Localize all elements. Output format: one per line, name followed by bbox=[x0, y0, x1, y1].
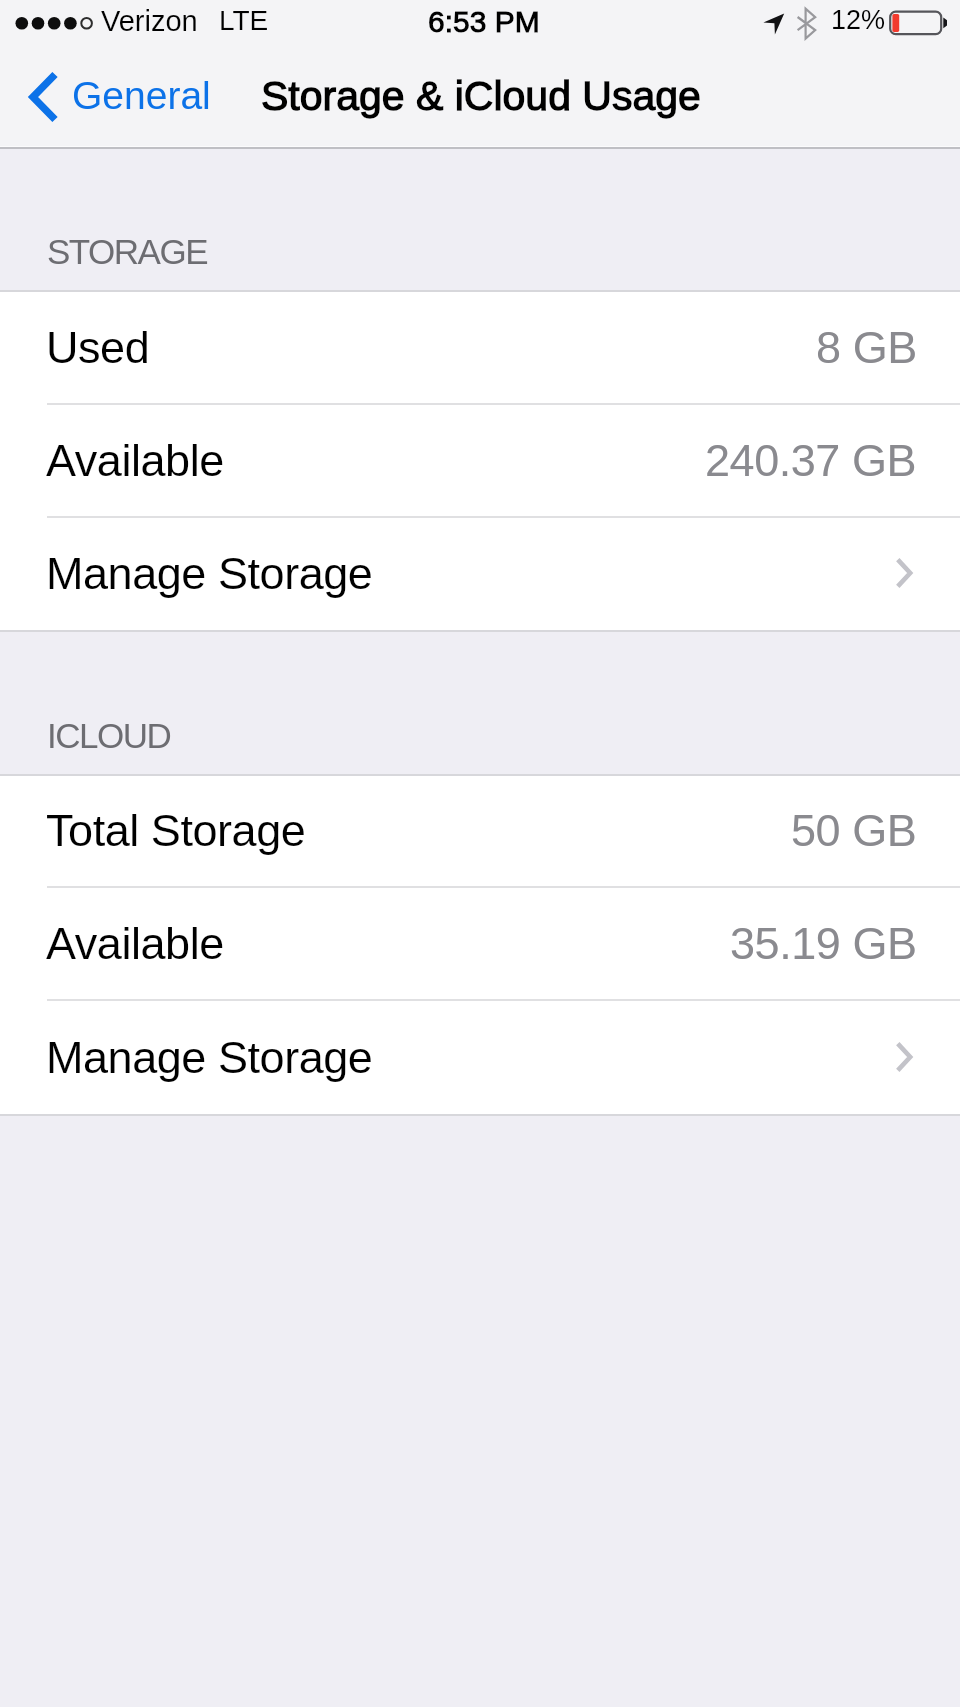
staticText: Total Storage bbox=[46, 805, 306, 855]
staticText: Available bbox=[46, 435, 224, 485]
button[interactable]: Total Storage bbox=[0, 776, 960, 888]
staticText: Available bbox=[46, 918, 224, 968]
button[interactable]: Available bbox=[0, 888, 960, 1001]
staticText: ICLOUD bbox=[47, 716, 171, 755]
button[interactable]: Available bbox=[0, 405, 960, 518]
staticText: Manage Storage bbox=[46, 1032, 373, 1082]
other: Battery 12 percent bbox=[889, 11, 949, 37]
staticText: 6:53 PM bbox=[428, 5, 540, 39]
staticText: Used bbox=[46, 322, 150, 372]
staticText: 50 GB bbox=[791, 805, 917, 855]
button[interactable]: General bbox=[0, 61, 225, 133]
staticText: 8 GB bbox=[816, 322, 917, 372]
button[interactable]: Manage Storage bbox=[0, 1001, 960, 1114]
staticText: 12% bbox=[831, 5, 886, 35]
other: Location services active bbox=[763, 13, 786, 36]
staticText: 240.37 GB bbox=[705, 435, 917, 485]
other: Open Manage Storage bbox=[895, 1041, 913, 1073]
staticText: STORAGE bbox=[47, 232, 208, 271]
other: Bluetooth on bbox=[797, 8, 817, 40]
other: Signal strength 4 of 5 bbox=[0, 0, 100, 47]
staticText: 35.19 GB bbox=[730, 918, 917, 968]
button[interactable]: Used bbox=[0, 292, 960, 405]
staticText: General bbox=[72, 74, 211, 118]
staticText: Storage & iCloud Usage bbox=[261, 73, 701, 119]
staticText: Manage Storage bbox=[46, 548, 373, 598]
button[interactable]: Manage Storage bbox=[0, 518, 960, 630]
other: Open Manage Storage bbox=[895, 557, 913, 589]
staticText: LTE bbox=[219, 5, 269, 36]
staticText: Verizon bbox=[101, 5, 198, 37]
